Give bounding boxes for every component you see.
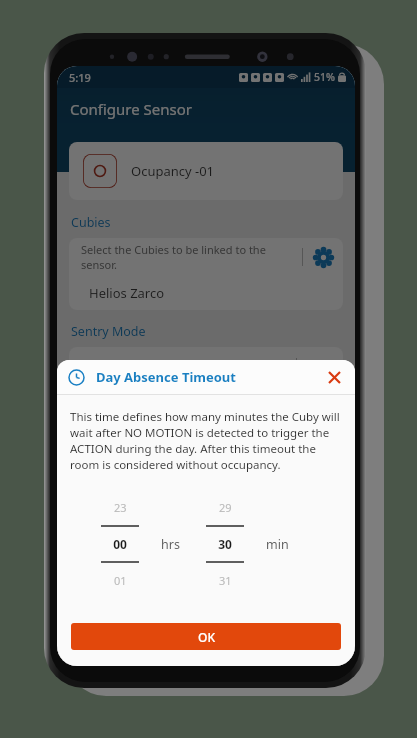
staticText: 01 bbox=[114, 573, 127, 588]
button[interactable]: Helios Zarco bbox=[69, 276, 343, 310]
staticText: Helios Zarco bbox=[89, 284, 165, 302]
staticText: Cubies bbox=[71, 214, 111, 231]
staticText: 30 bbox=[218, 536, 232, 552]
staticText: 31 bbox=[219, 573, 232, 588]
staticText: Select the Cubies to be linked to the se… bbox=[81, 242, 302, 272]
staticText: Configure Sensor bbox=[70, 99, 193, 119]
button[interactable]: Ocupancy -01 bbox=[69, 142, 343, 200]
staticText: Offline Mode bbox=[81, 359, 296, 377]
staticText: 00 bbox=[113, 536, 127, 552]
staticText: 5:19 bbox=[69, 70, 91, 85]
staticText: hrs bbox=[161, 536, 180, 553]
staticText: This time defines how many minutes the C… bbox=[70, 409, 342, 473]
button[interactable]: Close bbox=[321, 364, 347, 390]
staticText: 23 bbox=[114, 500, 127, 515]
staticText: OK bbox=[198, 629, 215, 645]
staticText: Ocupancy -01 bbox=[131, 162, 215, 180]
button[interactable]: Offline Mode bbox=[69, 347, 343, 389]
other: Settings bbox=[303, 238, 343, 276]
staticText: Sentry Mode bbox=[71, 323, 146, 340]
staticText: 51% bbox=[314, 70, 335, 84]
button[interactable]: Select the Cubies to be linked to the se… bbox=[69, 238, 343, 276]
button[interactable]: 29 bbox=[198, 500, 252, 588]
staticText: 29 bbox=[219, 500, 232, 515]
staticText: min bbox=[266, 536, 289, 553]
button[interactable]: 23 bbox=[93, 500, 147, 588]
button[interactable]: OK bbox=[71, 623, 341, 650]
staticText: Day Absence Timeout bbox=[96, 368, 236, 386]
